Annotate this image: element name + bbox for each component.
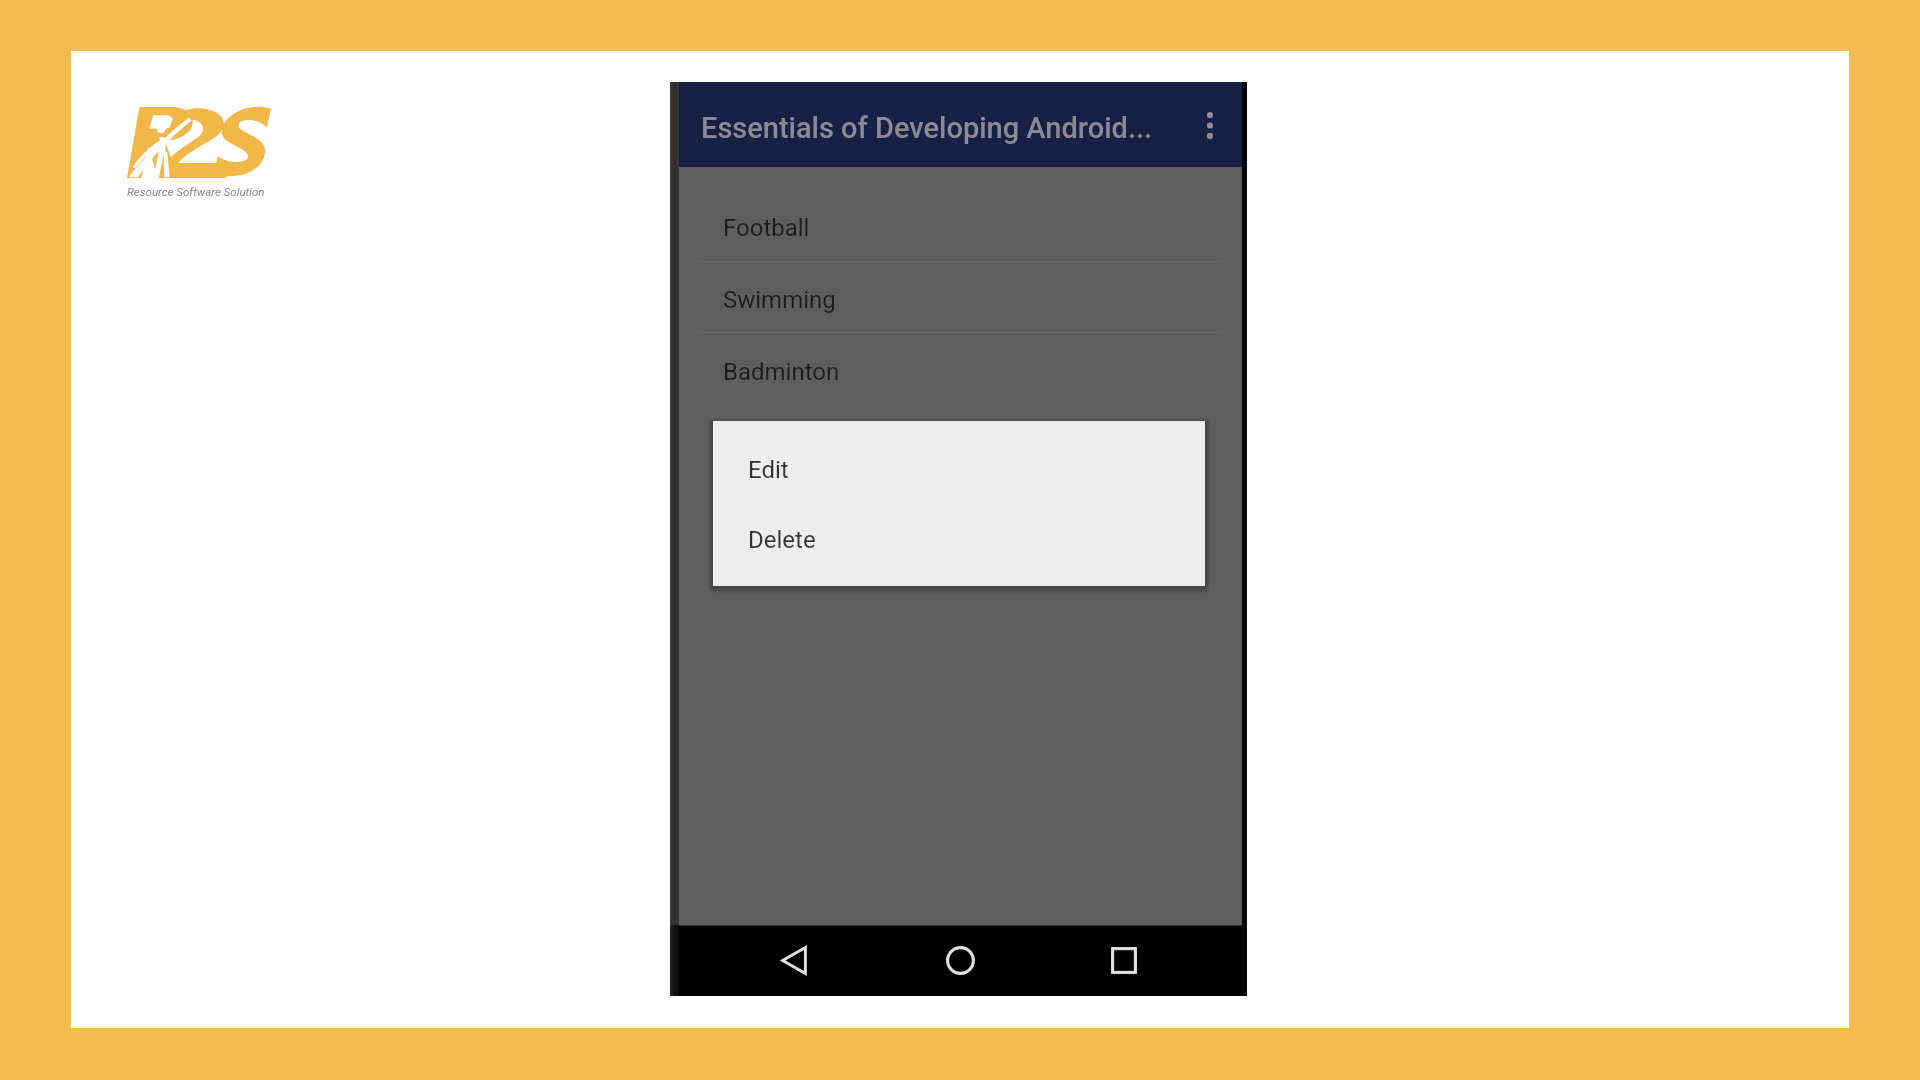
button[interactable]: Edit <box>713 434 1205 504</box>
button[interactable]: Home <box>931 931 989 989</box>
button[interactable]: Swimming <box>679 263 1242 334</box>
staticText: Badminton <box>723 358 840 386</box>
button[interactable]: Back <box>765 931 823 989</box>
staticText: Swimming <box>723 286 836 314</box>
button[interactable]: Football <box>679 191 1242 262</box>
button[interactable]: Delete <box>713 504 1205 574</box>
button[interactable]: Recents <box>1095 931 1153 989</box>
staticText: Resource Software Solution <box>127 185 265 198</box>
staticText: Football <box>723 214 810 242</box>
staticText: Delete <box>748 526 816 554</box>
button[interactable]: More options <box>1193 108 1227 142</box>
staticText: Edit <box>748 456 789 484</box>
staticText: Essentials of Developing Android... <box>701 111 1153 145</box>
button[interactable]: Badminton <box>679 335 1242 406</box>
